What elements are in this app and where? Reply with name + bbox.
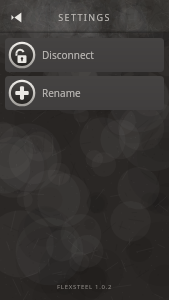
staticText: SETTINGS [58,11,111,23]
staticText: FLEXSTEEL 1.0.2 [57,283,113,291]
button[interactable]: Back [3,3,31,31]
button[interactable]: Disconnect [5,38,164,72]
button[interactable]: Rename [5,76,164,110]
staticText: Disconnect [42,48,94,62]
staticText: Rename [42,86,81,100]
